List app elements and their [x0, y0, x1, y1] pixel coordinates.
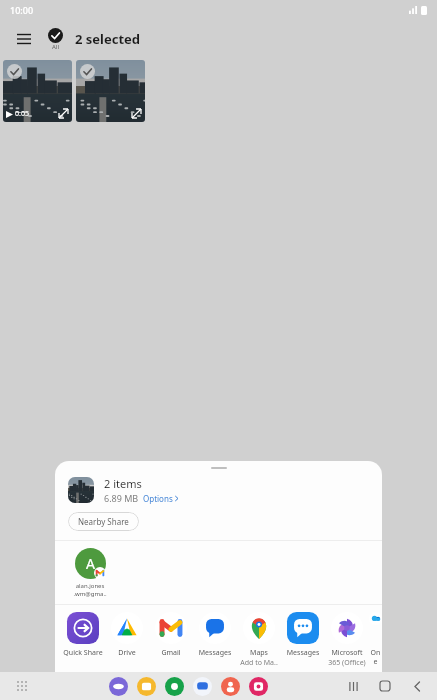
button[interactable]: Recents	[345, 678, 361, 694]
staticText: 2 items	[104, 476, 142, 491]
button[interactable]: Home	[377, 678, 393, 694]
button[interactable]: Back	[409, 678, 425, 694]
staticText: 10:00	[10, 4, 34, 16]
staticText: Messages	[193, 648, 237, 658]
staticText: One	[369, 648, 382, 666]
button[interactable]: Contacts	[221, 677, 240, 696]
button[interactable]: Gallery	[249, 677, 268, 696]
staticText: 0:05	[15, 109, 29, 119]
button[interactable]: Gmail	[149, 610, 193, 658]
staticText: Messages	[281, 648, 325, 658]
staticText: Drive	[105, 648, 149, 658]
other: Selected	[80, 64, 95, 79]
button[interactable]: Messages	[193, 677, 212, 696]
staticText: 365 (Office)	[325, 658, 369, 668]
staticText: Add to Ma..	[237, 658, 281, 668]
button[interactable]: Menu	[12, 27, 36, 51]
staticText: Options	[143, 493, 173, 504]
button[interactable]: Quick Share	[61, 610, 105, 658]
button[interactable]: Microsoft	[325, 610, 369, 668]
staticText: All	[52, 43, 59, 51]
other: Selected	[7, 64, 22, 79]
staticText: Nearby Share	[78, 516, 129, 527]
button[interactable]: Phone	[165, 677, 184, 696]
staticText: Gmail	[149, 648, 193, 658]
staticText: Maps	[237, 648, 281, 658]
staticText: alan.jones	[68, 582, 112, 590]
staticText: Microsoft	[325, 648, 369, 658]
button[interactable]: All	[48, 28, 63, 51]
button[interactable]: Options	[143, 493, 179, 504]
other: Expand	[132, 109, 141, 118]
button[interactable]: One	[369, 610, 382, 666]
button[interactable]: Drive	[105, 610, 149, 658]
staticText: Quick Share	[61, 648, 105, 658]
button[interactable]: Apps	[12, 676, 32, 696]
button[interactable]: Internet	[109, 677, 128, 696]
button[interactable]: Messages	[281, 610, 325, 658]
button[interactable]: Selected	[76, 60, 145, 122]
staticText: A	[86, 554, 95, 573]
button[interactable]: Selected	[3, 60, 72, 122]
staticText: 6.89 MB	[104, 492, 139, 504]
button[interactable]: A	[68, 548, 112, 598]
button[interactable]: My Files	[137, 677, 156, 696]
button[interactable]: Nearby Share	[68, 512, 139, 531]
other: Expand	[59, 109, 68, 118]
staticText: 2 selected	[75, 30, 141, 48]
button[interactable]: Maps	[237, 610, 281, 668]
button[interactable]: Messages	[193, 610, 237, 658]
staticText: .wm@gma..	[68, 590, 112, 598]
